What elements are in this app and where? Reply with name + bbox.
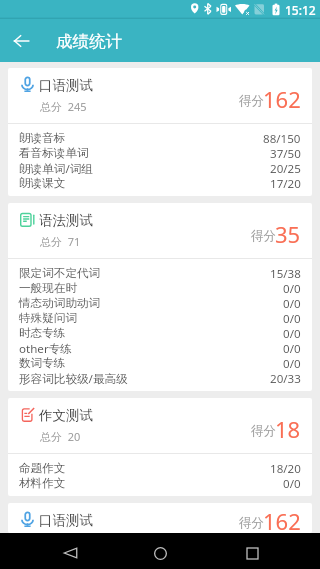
staticText: 限定词不定代词 <box>19 266 101 281</box>
staticText: 得分 <box>251 423 276 439</box>
staticText: 0/0 <box>283 356 301 371</box>
staticText: 朗读单词/词组 <box>19 161 93 176</box>
staticText: 总分 20 <box>40 429 81 444</box>
staticText: 20/25 <box>270 161 301 176</box>
staticText: 一般现在时 <box>19 281 77 296</box>
staticText: 朗读音标 <box>19 131 66 146</box>
staticText: 情态动词助动词 <box>19 296 101 311</box>
staticText: 35 <box>275 219 301 249</box>
staticText: 总分 245 <box>40 99 87 114</box>
staticText: 0/0 <box>283 296 301 311</box>
staticText: 20/33 <box>270 371 301 386</box>
staticText: 15/38 <box>270 266 301 281</box>
button[interactable]: 作文测试 <box>8 398 312 496</box>
staticText: 语法测试 <box>39 212 93 229</box>
staticText: 0/0 <box>283 341 301 356</box>
staticText: 162 <box>263 84 301 114</box>
staticText: 作文测试 <box>39 407 93 424</box>
staticText: 0/0 <box>283 476 301 491</box>
staticText: 18 <box>275 414 301 444</box>
button[interactable]: Recents <box>229 533 275 569</box>
button[interactable]: 口语测试 <box>8 68 312 196</box>
staticText: 15:12 <box>285 2 316 18</box>
button[interactable]: 口语测试 <box>8 503 312 533</box>
staticText: 得分 <box>239 515 264 531</box>
staticText: 特殊疑问词 <box>19 311 77 326</box>
staticText: 162 <box>263 506 301 533</box>
staticText: 朗读课文 <box>19 176 66 191</box>
staticText: 得分 <box>251 228 276 244</box>
staticText: 形容词比较级/最高级 <box>19 371 128 386</box>
staticText: 17/20 <box>270 176 301 191</box>
staticText: 命题作文 <box>19 461 66 476</box>
staticText: 总分 71 <box>40 234 81 249</box>
staticText: 口语测试 <box>39 512 93 529</box>
staticText: 材料作文 <box>19 476 66 491</box>
button[interactable]: 语法测试 <box>8 203 312 391</box>
button[interactable]: Back <box>0 20 42 62</box>
button[interactable]: Back <box>47 533 93 569</box>
staticText: 得分 <box>239 93 264 109</box>
staticText: 37/50 <box>270 146 301 161</box>
staticText: 18/20 <box>270 461 301 476</box>
staticText: 88/150 <box>263 131 301 146</box>
button[interactable]: Home <box>137 533 183 569</box>
staticText: other专练 <box>19 341 72 356</box>
staticText: 数词专练 <box>19 356 66 371</box>
staticText: 0/0 <box>283 326 301 341</box>
staticText: 时态专练 <box>19 326 66 341</box>
staticText: 成绩统计 <box>56 31 122 52</box>
staticText: 口语测试 <box>39 77 93 94</box>
staticText: 看音标读单词 <box>19 146 89 161</box>
staticText: 0/0 <box>283 281 301 296</box>
staticText: 0/0 <box>283 311 301 326</box>
